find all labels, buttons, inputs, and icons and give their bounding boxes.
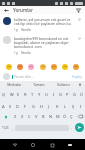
staticText: L [64, 104, 67, 109]
staticText: Yorumlar [13, 7, 33, 13]
staticText: . [71, 125, 73, 130]
staticText: Y [38, 92, 41, 97]
staticText: A [2, 104, 5, 109]
staticText: Q [2, 92, 6, 97]
button[interactable]: Z [11, 112, 19, 121]
button[interactable]: H [37, 102, 45, 110]
staticText: E [17, 92, 20, 97]
button[interactable]: Recents [48, 141, 56, 149]
button[interactable]: O [57, 90, 64, 99]
button[interactable]: Q [0, 90, 8, 99]
staticText: Ş [72, 104, 75, 109]
button[interactable]: G [29, 102, 37, 110]
button[interactable]: Keyboard [66, 141, 74, 149]
button[interactable]: Ç [68, 112, 75, 121]
staticText: I [53, 92, 55, 97]
button[interactable]: J [45, 102, 53, 110]
button[interactable]: Merhaba [2, 81, 26, 88]
button[interactable]: M [54, 112, 61, 121]
button[interactable]: Y [36, 90, 43, 99]
button[interactable]: Ü [78, 90, 85, 99]
button[interactable]: kullanici_adi yorumum cok guzel ve cok i… [0, 14, 85, 33]
button[interactable]: Emoji [72, 63, 80, 71]
button[interactable]: Yanıtla [21, 51, 31, 55]
staticText: F [24, 104, 27, 109]
button[interactable]: Shift [0, 112, 11, 121]
button[interactable]: Yanıtla [21, 28, 31, 32]
button[interactable]: Ğ [71, 90, 78, 99]
staticText: O [59, 92, 63, 97]
button[interactable]: Comma [10, 125, 15, 130]
staticText: Ğ [73, 92, 76, 97]
staticText: Kullanıcı [57, 83, 70, 87]
button[interactable]: N [47, 112, 54, 121]
button[interactable]: ?123 [1, 123, 10, 132]
button[interactable]: I [50, 90, 57, 99]
button[interactable]: I [77, 102, 85, 110]
button[interactable]: Back [3, 7, 10, 14]
button[interactable]: Ö [61, 112, 68, 121]
button[interactable]: E [15, 90, 22, 99]
button[interactable]: Home [29, 141, 37, 149]
button[interactable]: Back [11, 141, 19, 149]
staticText: R [24, 92, 27, 97]
staticText: M [56, 114, 60, 119]
button[interactable]: Emoji [61, 63, 69, 71]
staticText: C [28, 114, 31, 119]
button[interactable]: K [53, 102, 61, 110]
button[interactable]: Kullanıcı [51, 81, 76, 88]
button[interactable]: Tamam [26, 81, 51, 88]
staticText: X [21, 114, 24, 119]
button[interactable]: C [26, 112, 33, 121]
staticText: kullanici_adi yorumum cok guzel ve cok i… [14, 17, 75, 26]
staticText: H [40, 104, 43, 109]
button[interactable]: Paylaş [72, 75, 82, 79]
staticText: , [12, 125, 14, 130]
button[interactable]: Ş [69, 102, 77, 110]
staticText: Merhaba [7, 83, 21, 87]
button[interactable]: Emoji [16, 63, 24, 71]
staticText: G [32, 104, 35, 109]
staticText: P [66, 92, 69, 97]
staticText: Z [14, 114, 17, 119]
button[interactable]: Like [77, 36, 82, 41]
staticText: Ö [63, 114, 67, 119]
button[interactable]: R [22, 90, 29, 99]
staticText: I [80, 104, 82, 109]
button[interactable]: Voice input [76, 81, 83, 88]
button[interactable]: Emoji [50, 63, 58, 71]
staticText: V [35, 114, 38, 119]
staticText: ?123 [2, 126, 9, 130]
button[interactable]: W [8, 90, 15, 99]
staticText: basakgelen999 bonusbond en cok bagisladi… [14, 36, 75, 49]
button[interactable]: Emoji [27, 63, 35, 71]
button[interactable]: B [40, 112, 47, 121]
staticText: Ç [70, 114, 73, 119]
button[interactable]: Share [75, 7, 82, 14]
staticText: T [31, 92, 34, 97]
button[interactable]: P [64, 90, 71, 99]
button[interactable]: Like [77, 17, 82, 22]
button[interactable]: S [7, 102, 14, 110]
button[interactable]: L [61, 102, 69, 110]
staticText: B [42, 114, 45, 119]
button[interactable]: X [19, 112, 26, 121]
button[interactable]: F [21, 102, 29, 110]
staticText: K [56, 104, 59, 109]
button[interactable]: Emoji [5, 63, 13, 71]
button[interactable]: A [0, 102, 7, 110]
staticText: Ü [80, 92, 83, 97]
button[interactable]: basakgelen999 bonusbond en cok bagisladi… [0, 33, 85, 56]
button[interactable]: Period [69, 125, 74, 130]
button[interactable]: V [33, 112, 40, 121]
button[interactable]: Send [75, 123, 84, 132]
button[interactable]: T [29, 90, 36, 99]
button[interactable]: D [14, 102, 21, 110]
button[interactable]: Backspace [75, 112, 85, 121]
button[interactable]: Emoji [39, 63, 47, 71]
staticText: Yorum ekle... [14, 75, 72, 79]
staticText: S [9, 104, 12, 109]
staticText: D [16, 104, 19, 109]
button[interactable]: U [43, 90, 50, 99]
